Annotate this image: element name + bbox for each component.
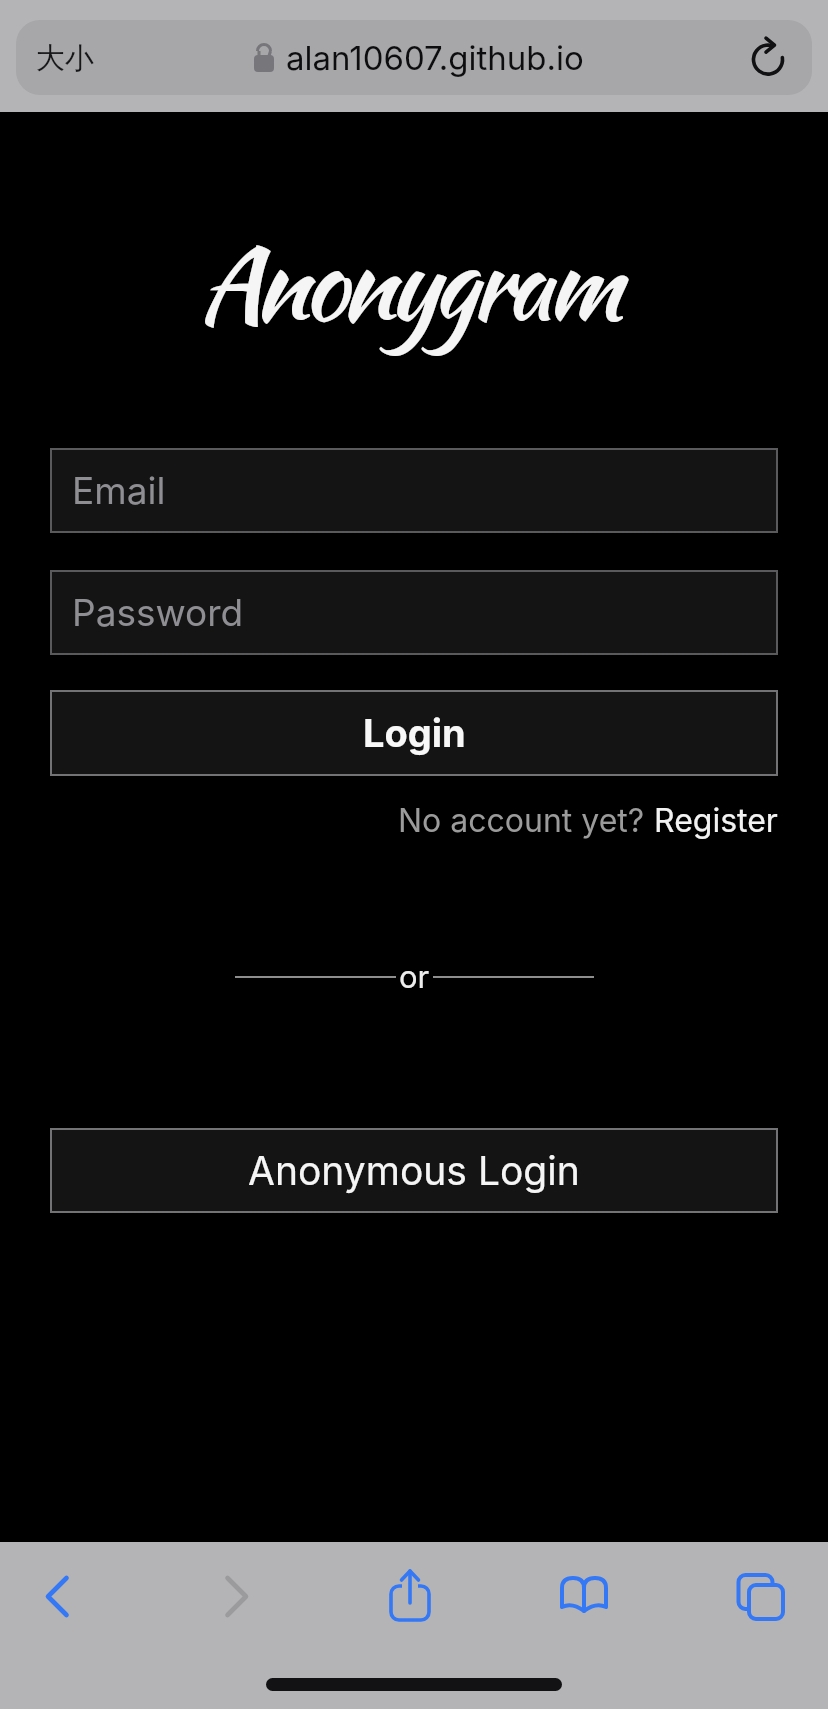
staticText: Register (654, 801, 778, 840)
staticText: Password (72, 590, 244, 635)
staticText: No account yet? (398, 801, 654, 840)
button[interactable]: Password (50, 570, 778, 655)
staticText: 大小 (36, 40, 94, 77)
button[interactable]: Anonymous Login (50, 1128, 778, 1213)
button[interactable]: Register (654, 801, 778, 840)
button[interactable] (28, 1570, 86, 1626)
button[interactable] (731, 1568, 791, 1626)
staticText: Anonygram (199, 211, 618, 356)
staticText: Anonymous Login (248, 1147, 580, 1194)
button[interactable] (736, 28, 800, 92)
button[interactable] (383, 1558, 437, 1628)
button[interactable]: Email (50, 448, 778, 533)
staticText: Login (363, 710, 466, 756)
staticText: or (399, 958, 430, 996)
staticText: alan10607.github.io (286, 38, 584, 78)
button[interactable] (208, 1570, 266, 1626)
button[interactable]: Login (50, 690, 778, 776)
button[interactable]: 大小 (16, 20, 812, 95)
button[interactable] (556, 1570, 614, 1622)
staticText: Email (72, 468, 166, 513)
button[interactable]: 大小 (36, 33, 106, 83)
